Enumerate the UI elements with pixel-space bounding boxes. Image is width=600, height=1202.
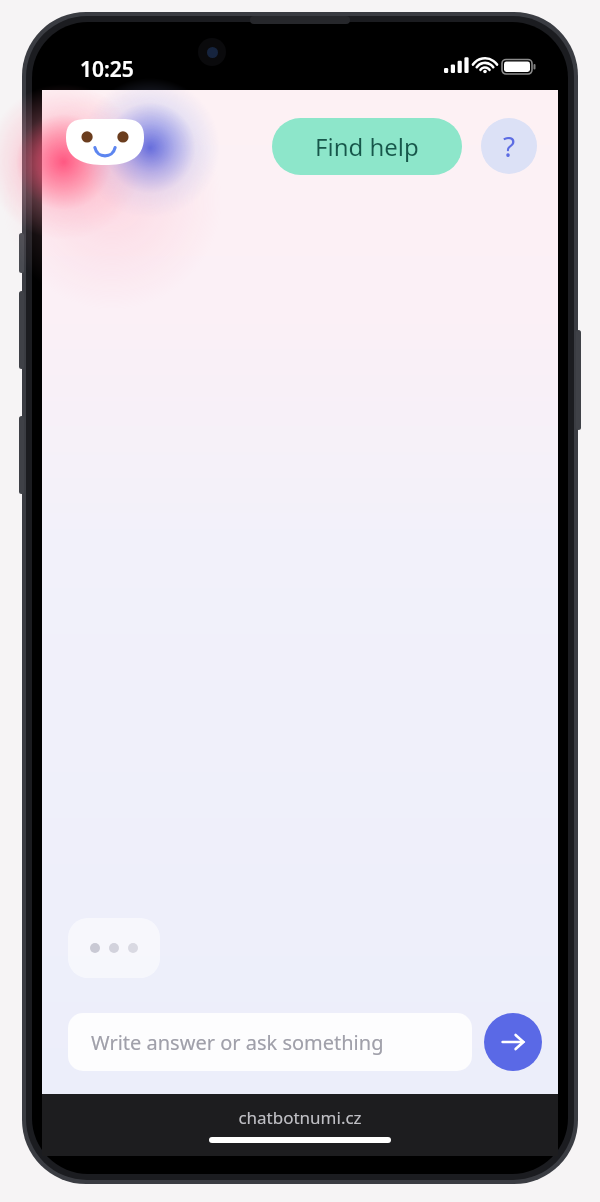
button[interactable]: Send <box>484 1013 542 1071</box>
button[interactable]: Find help <box>272 118 462 175</box>
staticText: ? <box>503 127 516 165</box>
button[interactable]: Write answer or ask something <box>68 1013 472 1071</box>
staticText: Find help <box>315 130 419 163</box>
staticText: Write answer or ask something <box>91 1029 384 1056</box>
staticText: 10:25 <box>80 55 134 84</box>
button[interactable]: Help <box>481 118 537 174</box>
staticText: chatbotnumi.cz <box>238 1106 362 1129</box>
